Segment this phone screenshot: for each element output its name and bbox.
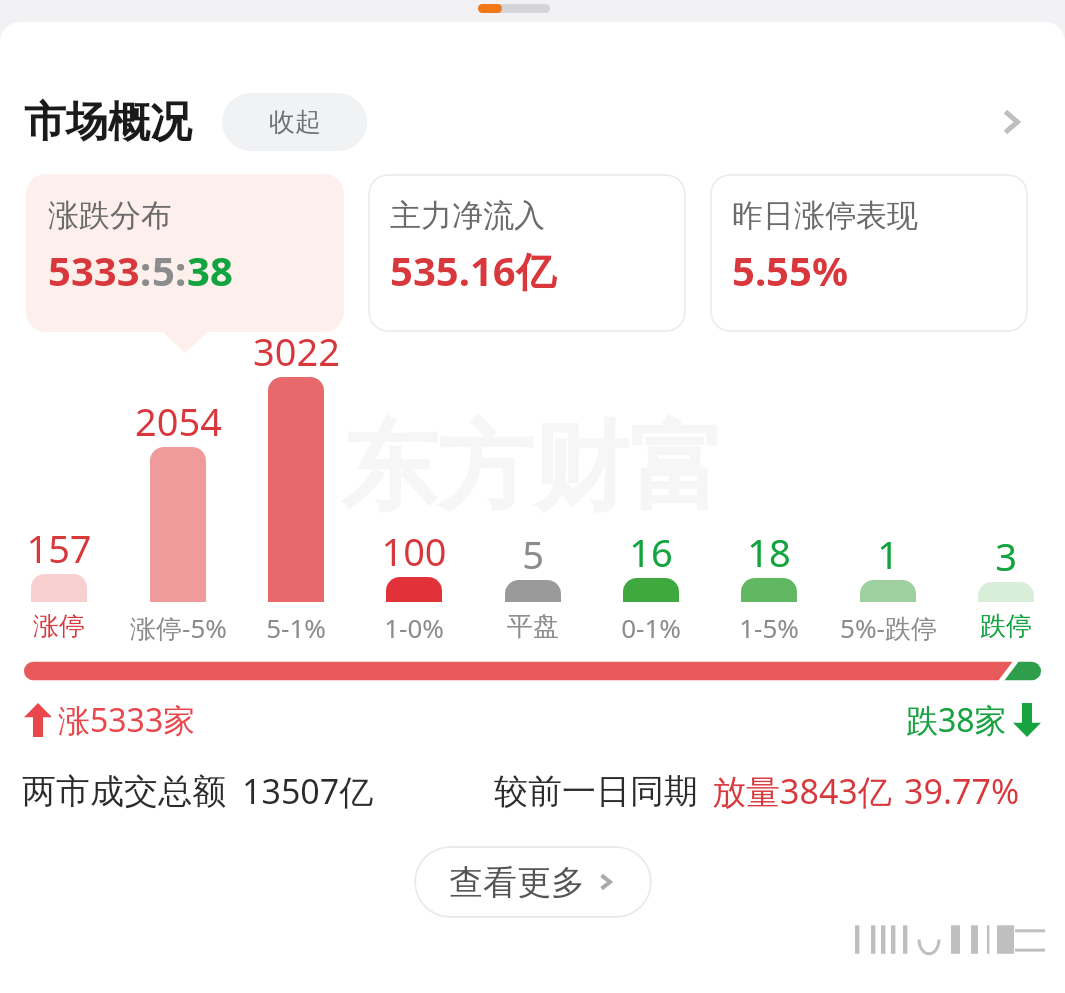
- staticText: 39.77%: [904, 768, 1020, 814]
- staticText: 两市成交总额: [22, 770, 226, 813]
- staticText: 13507亿: [242, 768, 374, 814]
- button[interactable]: 昨日涨停表现: [710, 174, 1028, 332]
- staticText: 535.16亿: [390, 243, 556, 298]
- staticText: 平盘: [507, 610, 559, 643]
- staticText: 5333: [48, 243, 140, 297]
- staticText: 1-5%: [739, 610, 799, 645]
- staticText: 放量3843亿: [712, 768, 892, 814]
- staticText: 较前一日同期: [494, 770, 698, 813]
- staticText: 涨停-5%: [130, 610, 227, 646]
- staticText: 18: [747, 526, 791, 578]
- staticText: 1-0%: [384, 610, 444, 645]
- staticText: 涨5333家: [58, 698, 196, 742]
- staticText: 涨跌分布: [48, 196, 172, 235]
- button[interactable]: 主力净流入: [368, 174, 686, 332]
- staticText: 2054: [135, 395, 222, 447]
- button[interactable]: More: [979, 90, 1043, 154]
- staticText: 昨日涨停表现: [732, 196, 918, 235]
- staticText: 涨停: [33, 610, 85, 643]
- staticText: 5: [522, 528, 544, 580]
- staticText: 38: [187, 243, 233, 297]
- staticText: :: [140, 243, 152, 297]
- button[interactable]: 涨跌分布: [26, 174, 344, 332]
- staticText: 市场概况: [24, 96, 192, 149]
- staticText: 100: [381, 525, 447, 577]
- staticText: 0-1%: [621, 610, 681, 645]
- staticText: 东方财富: [341, 408, 725, 529]
- staticText: 5-1%: [266, 610, 326, 645]
- staticText: 收起: [269, 106, 321, 139]
- button[interactable]: 市场概况: [0, 78, 1065, 166]
- staticText: 5: [152, 243, 175, 297]
- staticText: 3022: [253, 325, 340, 377]
- staticText: 1: [877, 528, 899, 580]
- staticText: :: [175, 243, 187, 297]
- staticText: 16: [629, 526, 673, 578]
- button[interactable]: 收起: [222, 93, 367, 151]
- staticText: 5%-跌停: [840, 610, 937, 646]
- staticText: 3: [995, 530, 1017, 582]
- button[interactable]: 查看更多: [414, 846, 652, 918]
- staticText: 5.55%: [732, 243, 848, 297]
- staticText: 主力净流入: [390, 196, 545, 235]
- staticText: 157: [26, 522, 92, 574]
- staticText: 跌停: [980, 610, 1032, 643]
- staticText: 查看更多: [449, 861, 585, 904]
- staticText: 跌38家: [906, 698, 1007, 742]
